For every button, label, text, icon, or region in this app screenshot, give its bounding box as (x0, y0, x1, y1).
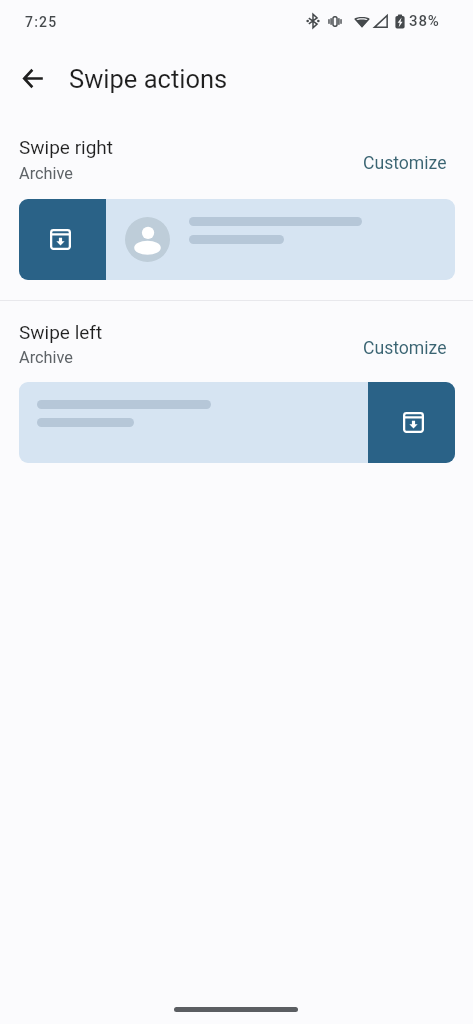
staticText: Swipe left (19, 321, 103, 343)
staticText: 7:25 (25, 14, 58, 30)
staticText: Customize (363, 153, 447, 174)
staticText: Swipe actions (69, 64, 228, 94)
staticText: Archive (19, 348, 73, 367)
staticText: Swipe right (19, 136, 114, 158)
staticText: Archive (19, 164, 73, 183)
button[interactable] (19, 382, 455, 463)
button[interactable]: Customize (352, 145, 458, 182)
button[interactable]: Navigate up (12, 57, 55, 100)
button[interactable]: Customize (352, 330, 458, 367)
staticText: 38% (409, 12, 440, 30)
button[interactable] (19, 199, 455, 280)
staticText: Customize (363, 338, 447, 359)
